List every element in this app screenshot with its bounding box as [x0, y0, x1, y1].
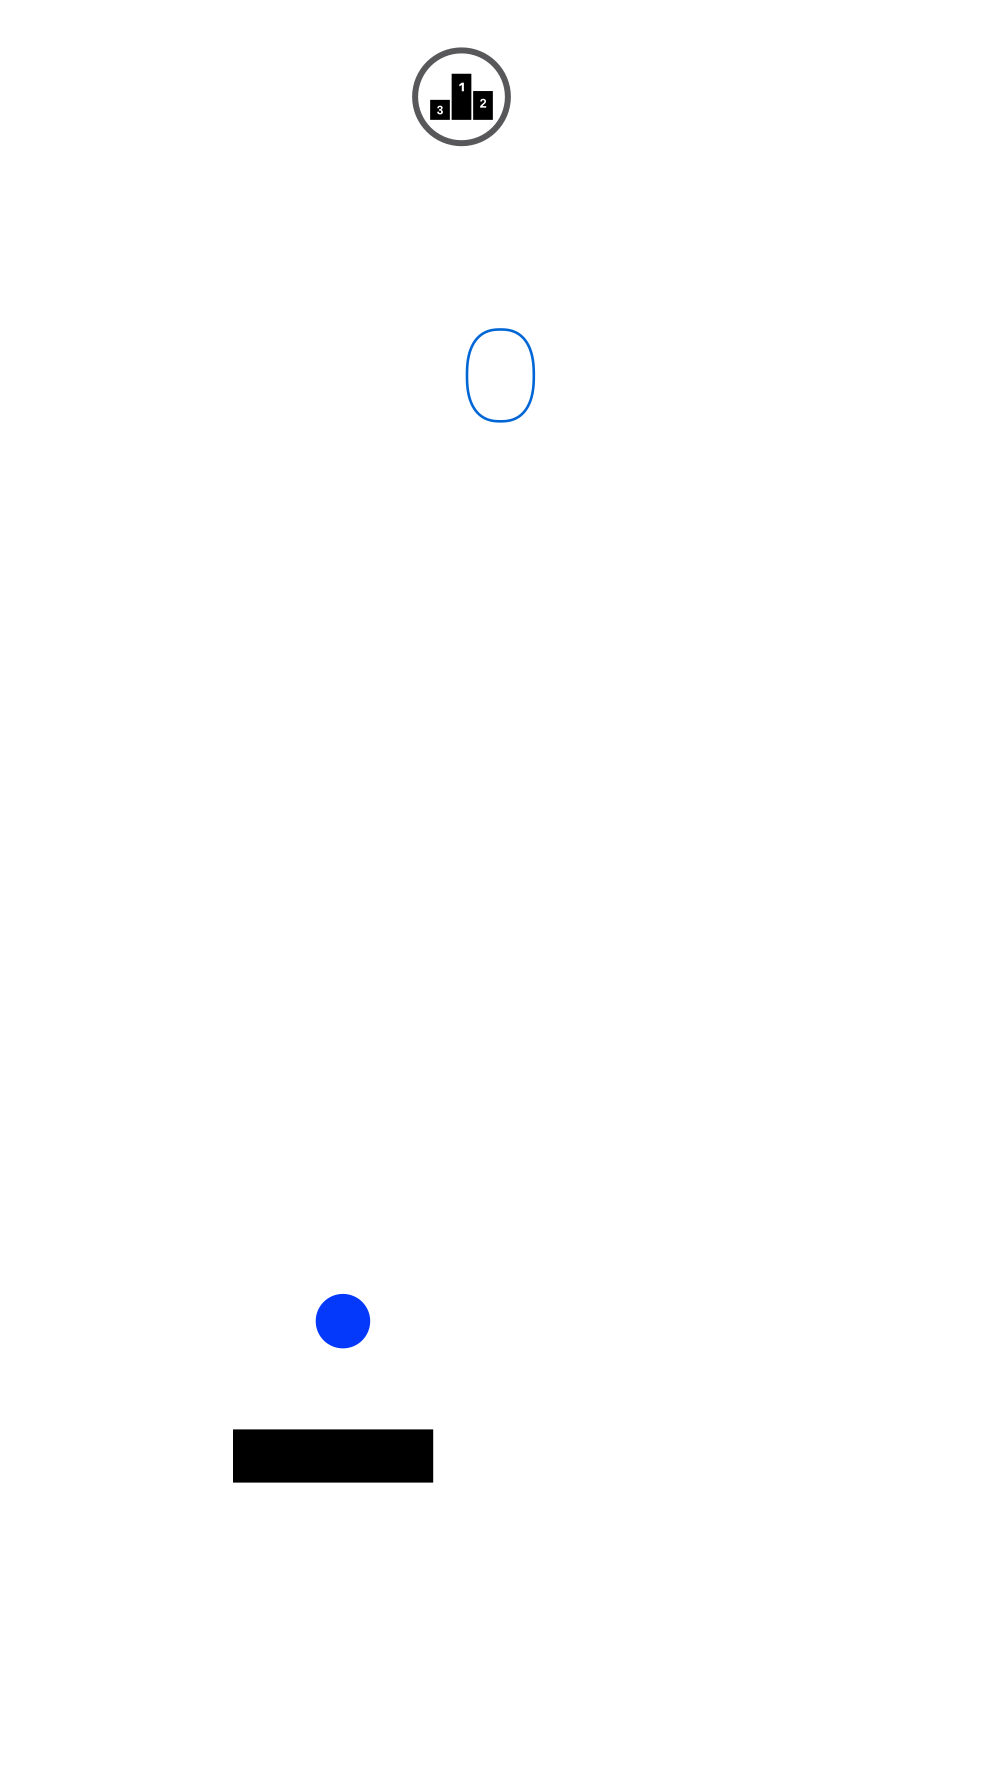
- button[interactable]: Outline: [467, 329, 534, 421]
- button[interactable]: Leaderboard: [415, 50, 508, 143]
- button[interactable]: Dot: [316, 1294, 370, 1348]
- button[interactable]: Bar: [233, 1429, 433, 1483]
